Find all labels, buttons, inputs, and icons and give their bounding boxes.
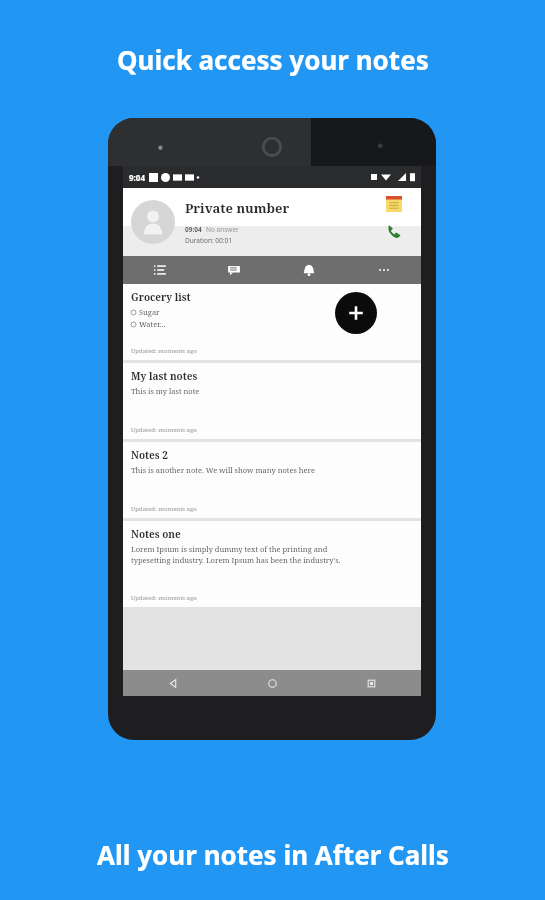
button[interactable]: Home xyxy=(223,670,322,696)
button[interactable]: Notes 2 xyxy=(123,442,421,518)
staticText: 09:04 xyxy=(185,225,202,234)
staticText: Updated: moments ago xyxy=(131,426,197,434)
staticText: Duration: 00:01 xyxy=(185,236,232,245)
staticText: Lorem Ipsum is simply dummy text of the … xyxy=(131,544,328,554)
staticText: 9:04 xyxy=(129,172,145,183)
staticText: Updated: moments ago xyxy=(131,505,197,513)
staticText: My last notes xyxy=(131,369,198,383)
button[interactable]: Add note xyxy=(335,292,377,334)
staticText: Updated: moments ago xyxy=(131,594,197,602)
staticText: This is my last note xyxy=(131,386,200,396)
staticText: Updated: moments ago xyxy=(131,347,197,355)
button[interactable]: Contact avatar xyxy=(131,200,175,244)
staticText: All your notes in After Calls xyxy=(97,837,449,872)
staticText: Notes one xyxy=(131,527,181,541)
button[interactable]: Recents xyxy=(322,670,421,696)
staticText: Private number xyxy=(185,199,290,217)
staticText: Water... xyxy=(139,319,166,329)
button[interactable]: Notes one xyxy=(123,521,421,607)
staticText: Notes 2 xyxy=(131,448,168,462)
button[interactable]: Call xyxy=(385,222,403,240)
button[interactable]: List xyxy=(123,256,197,284)
button[interactable]: More xyxy=(346,256,421,284)
staticText: Sugar xyxy=(139,307,160,317)
button[interactable]: Back xyxy=(123,670,223,696)
staticText: typesetting industry. Lorem Ipsum has be… xyxy=(131,555,341,565)
button[interactable]: Grocery list xyxy=(123,284,421,360)
staticText: Quick access your notes xyxy=(117,42,429,77)
button[interactable]: Note xyxy=(386,196,402,212)
staticText: Grocery list xyxy=(131,290,191,304)
button[interactable]: My last notes xyxy=(123,363,421,439)
staticText: No answer xyxy=(206,225,239,234)
button[interactable]: Messages xyxy=(197,256,271,284)
staticText: This is another note. We will show many … xyxy=(131,465,316,475)
button[interactable]: Reminders xyxy=(271,256,346,284)
